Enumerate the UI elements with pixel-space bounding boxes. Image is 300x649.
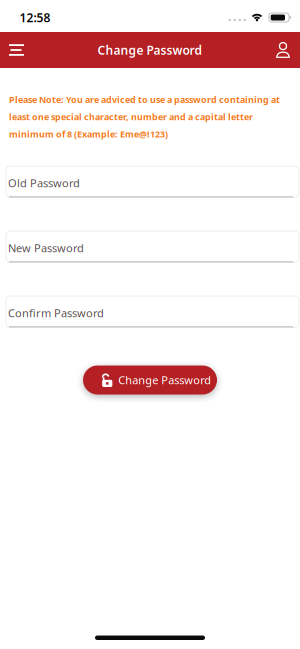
button[interactable]: New Password bbox=[0, 231, 300, 262]
button[interactable]: Change Password bbox=[83, 365, 217, 394]
button[interactable]: Old Password bbox=[0, 166, 300, 197]
staticText: 12:58 bbox=[19, 9, 50, 26]
button[interactable]: Profile bbox=[268, 32, 300, 68]
staticText: least one special character, number and … bbox=[9, 111, 253, 123]
staticText: minimum of 8 (Example: Eme@!123) bbox=[9, 128, 168, 140]
button[interactable]: Confirm Password bbox=[0, 296, 300, 327]
staticText: Change Password bbox=[97, 42, 202, 58]
staticText: Old Password bbox=[8, 175, 80, 191]
staticText: New Password bbox=[8, 240, 84, 256]
staticText: Change Password bbox=[118, 373, 211, 387]
staticText: Please Note: You are adviced to use a pa… bbox=[9, 93, 280, 106]
button[interactable]: Menu bbox=[0, 32, 32, 68]
staticText: Confirm Password bbox=[8, 305, 104, 321]
